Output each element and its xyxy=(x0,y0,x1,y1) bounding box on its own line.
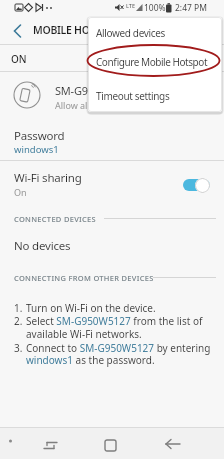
button[interactable] xyxy=(183,179,210,191)
staticText: Password xyxy=(14,128,65,144)
staticText: Allow all devices xyxy=(55,99,124,111)
staticText: windows1 xyxy=(14,143,59,156)
button[interactable]: Allowed devices xyxy=(88,21,221,50)
button[interactable] xyxy=(93,427,129,459)
staticText: 1. xyxy=(14,301,23,315)
staticText: Wi-Fi sharing xyxy=(14,170,82,186)
staticText: LTE xyxy=(126,2,135,9)
button[interactable]: Wi-Fi sharing xyxy=(0,161,224,205)
staticText: CONNECTED DEVICES xyxy=(14,214,96,224)
staticText: Turn on Wi-Fi on the device. xyxy=(26,301,156,315)
staticText: Select SM-G950W5127 from the list of xyxy=(26,314,203,328)
staticText: 2. xyxy=(14,314,23,328)
button[interactable]: Timeout settings xyxy=(88,83,221,112)
button[interactable] xyxy=(32,427,68,459)
button[interactable]: ON xyxy=(0,45,224,72)
staticText: CONNECTING FROM OTHER DEVICES xyxy=(14,273,154,283)
staticText: SM-G950W5127 xyxy=(55,83,135,98)
staticText: 2:47 PM xyxy=(175,2,207,14)
staticText: MOBILE HOTSPOT xyxy=(33,23,120,37)
button[interactable]: No devices xyxy=(0,232,224,260)
button[interactable] xyxy=(4,18,30,44)
staticText: No devices xyxy=(14,238,71,254)
staticText: On xyxy=(14,186,27,198)
staticText: 100% xyxy=(144,2,166,14)
staticText: Allowed devices xyxy=(96,26,165,40)
staticText: Connect to SM-G950W5127 by entering xyxy=(26,341,211,355)
button[interactable] xyxy=(154,427,190,459)
staticText: windows1 as the password. xyxy=(26,353,155,367)
staticText: Configure Mobile Hotspot xyxy=(96,55,208,69)
button[interactable]: Password xyxy=(0,119,224,161)
staticText: 3. xyxy=(14,341,23,355)
staticText: available Wi-Fi networks. xyxy=(26,327,142,341)
button[interactable]: SM-G950W5127 xyxy=(0,72,224,114)
staticText: Timeout settings xyxy=(96,89,170,103)
button[interactable]: Configure Mobile Hotspot xyxy=(88,50,221,79)
staticText: ON xyxy=(11,52,27,66)
